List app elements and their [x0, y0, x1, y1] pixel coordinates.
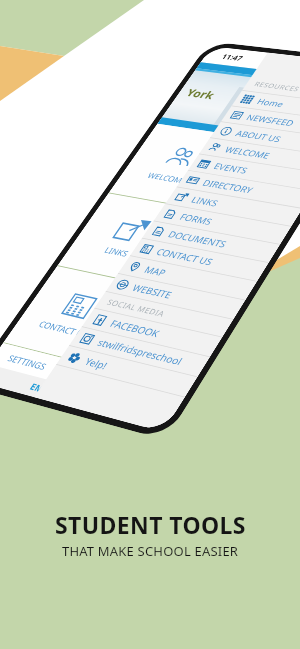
button[interactable]: NEWSFEED — [221, 106, 300, 140]
button[interactable]: CONTACT US — [3, 266, 145, 365]
staticText: 11:47 — [220, 52, 245, 63]
button[interactable]: LINKS — [58, 193, 196, 284]
button[interactable]: DOCUMENTS — [142, 221, 280, 263]
button[interactable]: FACEBOOK — [82, 308, 222, 357]
button[interactable]: CONTACT US — [130, 238, 268, 282]
staticText: WELCOME — [145, 170, 190, 186]
staticText: EVENTS — [211, 160, 251, 176]
staticText: FORMS — [177, 211, 215, 227]
button[interactable]: WELCOME — [109, 124, 244, 208]
staticText: THAT MAKE SCHOOL EASIER — [62, 542, 239, 560]
button[interactable]: DIRECTORY — [176, 171, 300, 209]
staticText: RESOURCES — [253, 79, 300, 93]
button[interactable]: LINKS — [165, 187, 300, 227]
button[interactable]: stwilfridspreschool — [69, 327, 210, 377]
staticText: EVENTS — [241, 186, 277, 201]
staticText: ABOUT US — [233, 128, 284, 144]
staticText: EMERGENCY ALERTS — [27, 380, 118, 414]
staticText: LINKS — [189, 194, 221, 209]
button[interactable]: WELCOME — [199, 138, 300, 174]
staticText: DIRECTORY — [200, 177, 256, 196]
staticText: NEWSFEED — [244, 112, 297, 128]
staticText: FACEBOOK — [108, 317, 163, 340]
staticText: stwilfridspreschool — [95, 336, 186, 368]
staticText: SOCIAL MEDIA — [105, 297, 168, 318]
button[interactable]: EVENTS — [197, 136, 300, 225]
staticText: MAP — [142, 263, 169, 279]
button[interactable]: FORMS — [147, 209, 292, 305]
button[interactable]: ABOUT US — [210, 122, 300, 157]
staticText: STUDENT TOOLS — [55, 509, 246, 540]
staticText: York — [183, 86, 219, 102]
staticText: FORMS — [192, 262, 227, 279]
button[interactable]: WEBSITE — [105, 274, 245, 320]
button[interactable]: Home — [231, 91, 300, 123]
staticText: Home — [255, 96, 287, 109]
staticText: DOCUMENTS — [166, 228, 230, 250]
staticText: SETTINGS — [5, 352, 50, 373]
staticText: Yelp! — [82, 355, 111, 372]
staticText: CONTACT US — [36, 318, 91, 340]
button[interactable]: MAP — [118, 256, 257, 301]
staticText: WEBSITE — [130, 281, 175, 301]
staticText: MAP — [144, 344, 170, 359]
button[interactable]: Yelp! — [56, 346, 197, 398]
staticText: CONTACT US — [154, 246, 216, 268]
staticText: WELCOME — [222, 144, 273, 161]
button[interactable]: MAP — [93, 285, 242, 389]
staticText: LINKS — [102, 244, 131, 259]
button[interactable]: FORMS — [153, 204, 291, 245]
button[interactable]: EVENTS — [188, 154, 300, 191]
